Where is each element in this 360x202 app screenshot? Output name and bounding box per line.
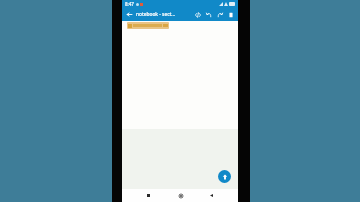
button[interactable]: Add xyxy=(218,170,231,183)
button[interactable]: Redo xyxy=(215,10,224,19)
button[interactable] xyxy=(127,22,169,29)
button[interactable]: Undo xyxy=(204,10,213,19)
staticText: notebook - sect... xyxy=(136,11,176,18)
button[interactable]: Save xyxy=(226,10,235,19)
button[interactable]: Back xyxy=(206,190,217,201)
staticText: 8:47 xyxy=(125,1,134,7)
button[interactable]: Format code xyxy=(193,10,202,19)
button[interactable]: Recents xyxy=(143,190,154,201)
button[interactable]: Back xyxy=(125,10,134,19)
button[interactable]: Home xyxy=(175,190,186,201)
